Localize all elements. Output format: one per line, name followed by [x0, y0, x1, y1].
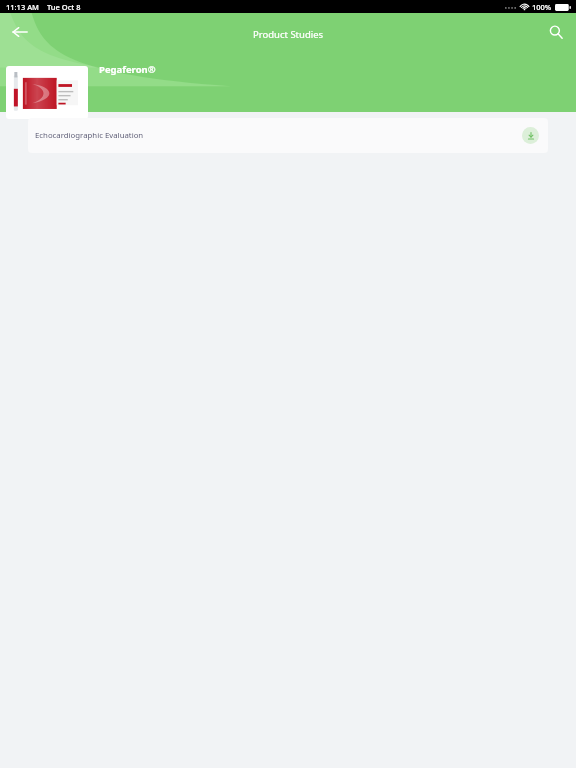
- staticText: Echocardiographic Evaluation: [35, 130, 144, 141]
- button[interactable]: Echocardiographic Evaluation: [28, 118, 548, 153]
- staticText: Pegaferon®: [99, 63, 156, 76]
- button[interactable]: Download: [522, 127, 539, 144]
- button[interactable]: [6, 66, 88, 119]
- staticText: 11:13 AM: [6, 2, 39, 12]
- staticText: Product Studies: [253, 28, 324, 41]
- staticText: Tue Oct 8: [47, 2, 81, 12]
- button[interactable]: Search: [539, 15, 573, 49]
- button[interactable]: Back: [3, 15, 37, 49]
- staticText: 100%: [532, 2, 552, 12]
